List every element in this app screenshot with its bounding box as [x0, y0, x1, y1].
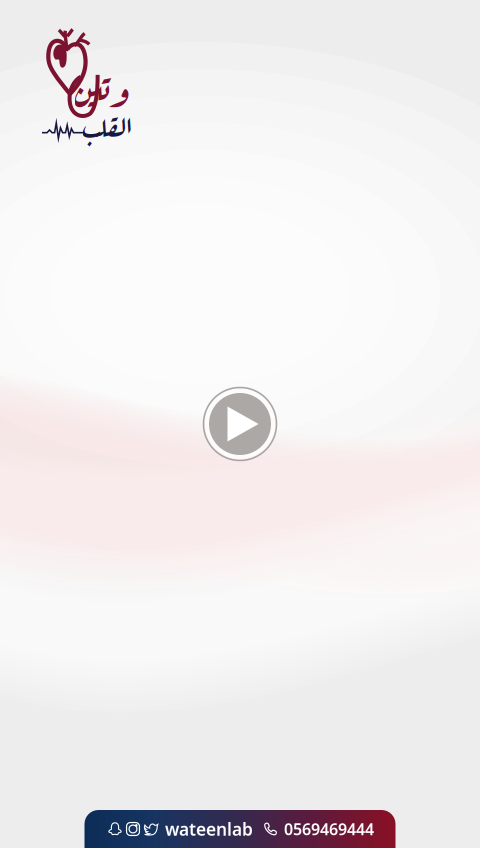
- staticText: القلب: [82, 102, 132, 145]
- staticText: وتين: [74, 60, 128, 117]
- button[interactable]: wateenlab: [84, 810, 395, 848]
- staticText: 0569469444: [284, 818, 374, 840]
- staticText: wateenlab: [165, 817, 253, 840]
- button[interactable]: Play: [201, 385, 279, 463]
